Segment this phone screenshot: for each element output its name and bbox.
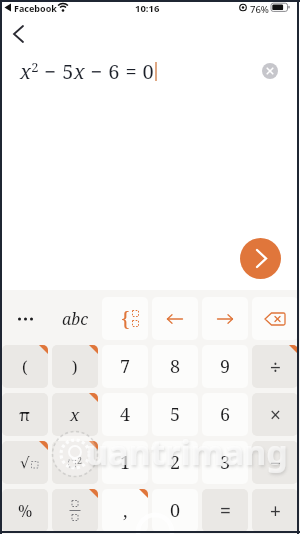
button[interactable]: 2 — [52, 441, 98, 484]
button[interactable]: √ — [2, 441, 48, 484]
staticText: x2 − 5x − 6 = 0 — [20, 58, 155, 85]
button[interactable]: 8 — [152, 345, 198, 388]
button[interactable] — [240, 238, 281, 279]
staticText: ( — [22, 356, 28, 378]
button[interactable] — [252, 297, 298, 340]
staticText: 76% — [250, 3, 269, 16]
staticText: uantrimang — [86, 429, 288, 475]
button[interactable]: 5 — [152, 393, 198, 436]
staticText: ) — [72, 356, 78, 378]
staticText: { — [121, 305, 130, 332]
button[interactable]: − — [252, 441, 298, 484]
staticText: √ — [20, 454, 30, 471]
button[interactable]: 7 — [102, 345, 148, 388]
button[interactable]: { — [102, 297, 148, 340]
button[interactable]: , — [102, 489, 148, 532]
button[interactable]: 0 — [152, 489, 198, 532]
staticText: 0 — [170, 498, 181, 523]
button[interactable]: = — [202, 489, 248, 532]
staticText: 2 — [77, 454, 83, 466]
staticText: 2 — [170, 450, 181, 475]
button[interactable] — [202, 297, 248, 340]
staticText: π — [19, 403, 31, 426]
staticText: 7 — [120, 354, 131, 379]
staticText: − — [270, 450, 281, 476]
button[interactable]: ÷ — [252, 345, 298, 388]
button[interactable]: 3 — [202, 441, 248, 484]
button[interactable] — [8, 22, 32, 46]
button[interactable]: abc — [52, 297, 98, 340]
staticText: × — [270, 402, 281, 428]
button[interactable]: ( — [2, 345, 48, 388]
button[interactable]: 2 — [152, 441, 198, 484]
button[interactable] — [52, 489, 98, 532]
button[interactable]: ) — [52, 345, 98, 388]
staticText: x — [70, 403, 80, 426]
staticText: 3 — [220, 450, 231, 475]
button[interactable]: 9 — [202, 345, 248, 388]
staticText: 8 — [170, 354, 181, 379]
staticText: 1 — [120, 450, 131, 475]
button[interactable] — [262, 63, 278, 79]
staticText: = — [220, 498, 231, 524]
button[interactable]: 1 — [102, 441, 148, 484]
button[interactable]: + — [252, 489, 298, 532]
staticText: 5 — [170, 402, 181, 427]
button[interactable] — [152, 297, 198, 340]
button[interactable]: 4 — [102, 393, 148, 436]
staticText: abc — [62, 308, 89, 330]
staticText: % — [18, 500, 33, 522]
staticText: 4 — [120, 402, 131, 427]
staticText: + — [270, 498, 281, 524]
staticText: 6 — [220, 402, 231, 427]
staticText: ÷ — [270, 354, 281, 380]
button[interactable]: π — [2, 393, 48, 436]
button[interactable]: % — [2, 489, 48, 532]
staticText: 10:16 — [135, 2, 160, 15]
staticText: 9 — [220, 354, 231, 379]
staticText: Facebook — [14, 2, 57, 14]
button[interactable]: 6 — [202, 393, 248, 436]
button[interactable] — [2, 297, 48, 340]
staticText: , — [123, 498, 128, 523]
button[interactable]: × — [252, 393, 298, 436]
button[interactable]: x — [52, 393, 98, 436]
